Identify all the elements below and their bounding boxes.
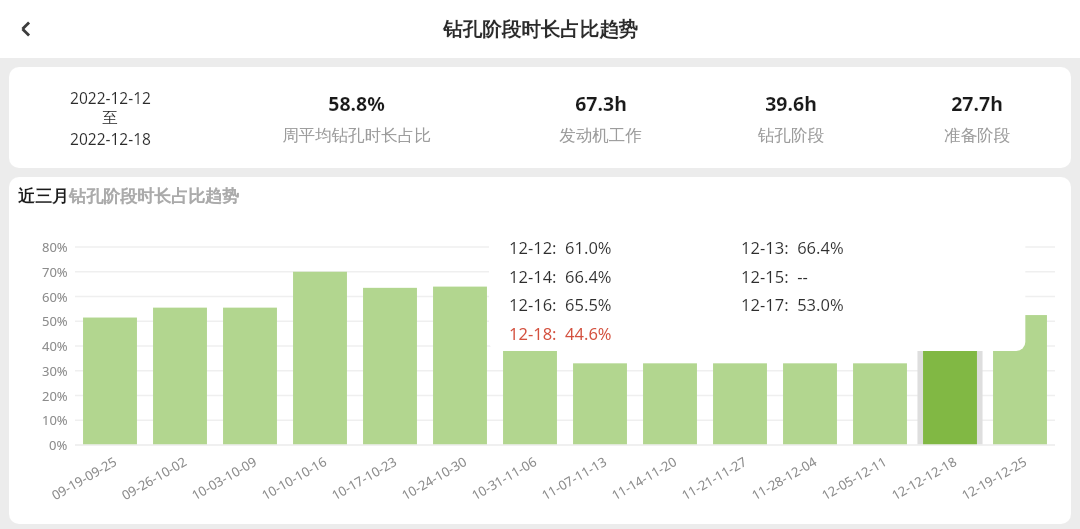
staticText: 钻孔阶段时长占比趋势 — [69, 186, 239, 207]
staticText: 27.7h — [951, 90, 1003, 117]
staticText: 准备阶段 — [944, 125, 1010, 146]
staticText: 至 — [102, 108, 118, 128]
button[interactable]: 27.7h — [883, 90, 1071, 146]
staticText: 67.3h — [575, 90, 627, 117]
staticText: 发动机工作 — [559, 125, 642, 146]
button[interactable]: Back — [4, 7, 48, 51]
staticText: 近三月 — [18, 186, 69, 207]
staticText: 2022-12-12 — [70, 87, 151, 108]
button[interactable]: 2022-12-12 — [9, 67, 1071, 168]
staticText: 周平均钻孔时长占比 — [282, 125, 431, 146]
staticText: 2022-12-18 — [70, 128, 151, 149]
staticText: 39.6h — [765, 90, 817, 117]
button[interactable]: 58.8% — [211, 90, 502, 146]
button[interactable]: 39.6h — [699, 90, 883, 146]
staticText: 钻孔阶段时长占比趋势 — [443, 17, 638, 42]
staticText: 钻孔阶段 — [758, 125, 824, 146]
staticText: 58.8% — [328, 90, 385, 117]
button[interactable]: 67.3h — [502, 90, 699, 146]
